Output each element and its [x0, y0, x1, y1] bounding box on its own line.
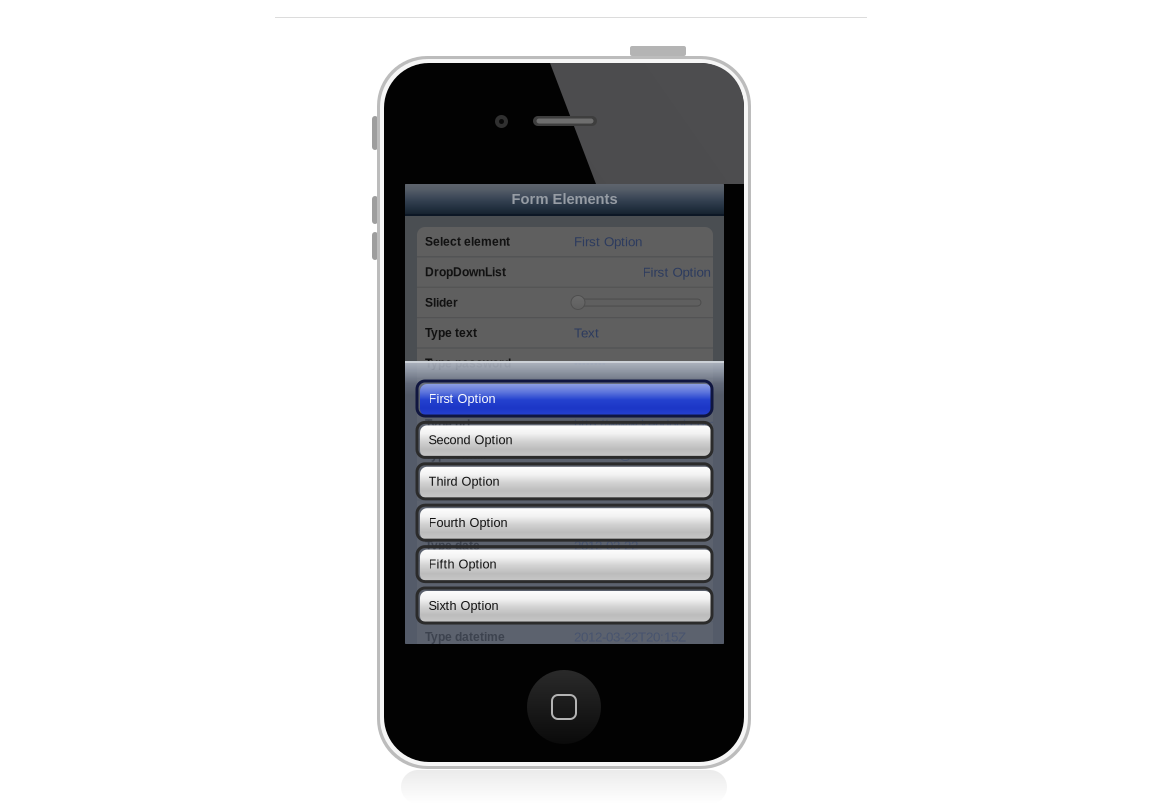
button[interactable]: Sixth Option [417, 588, 712, 623]
staticText: Second Option [428, 433, 512, 447]
staticText: Type date [425, 539, 480, 552]
staticText: 10:30 PM [574, 569, 630, 584]
button[interactable]: Type url [417, 409, 713, 439]
button[interactable]: DropDownList [417, 257, 713, 287]
staticText: Text [574, 325, 599, 340]
staticText: Select element [425, 235, 510, 248]
staticText: Type email [425, 448, 486, 461]
staticText: First Option [428, 391, 495, 406]
button[interactable]: Type time [417, 561, 713, 591]
button[interactable]: First Option [417, 381, 712, 416]
staticText: Type text [425, 326, 477, 340]
staticText: First Option [574, 234, 642, 249]
staticText: Type datetime [425, 630, 505, 644]
staticText: 2012-03-22 [574, 538, 638, 553]
button[interactable]: Type month [417, 592, 713, 621]
staticText: Fourth Option [428, 516, 507, 530]
button[interactable]: Second Option [417, 422, 712, 457]
staticText: +1 555 0100 [574, 508, 646, 523]
button[interactable]: Type search [417, 379, 713, 408]
staticText: Fifth Option [428, 557, 496, 571]
staticText: Slider [425, 296, 458, 309]
staticText: 2012-03-22T20:15Z [574, 629, 686, 644]
button[interactable]: Type datetime [417, 622, 713, 652]
button[interactable]: Type password [417, 349, 713, 378]
button[interactable]: Fourth Option [417, 505, 712, 540]
staticText: First Option [642, 265, 710, 280]
button[interactable]: Type email [417, 440, 713, 469]
staticText: http://www.kendoui.com [574, 417, 715, 432]
staticText: Type number [425, 478, 499, 492]
button[interactable]: Type tel [417, 501, 713, 530]
button[interactable]: Type number [417, 470, 713, 500]
button[interactable]: Third Option [417, 464, 712, 499]
staticText: Type password [425, 357, 511, 370]
staticText: Type time [425, 569, 480, 583]
staticText: •••••••• [574, 357, 606, 369]
staticText: Search [574, 386, 615, 401]
staticText: Type month [425, 600, 491, 613]
staticText: Type url [425, 417, 470, 431]
button[interactable]: Type date [417, 531, 713, 560]
button[interactable]: Select element [417, 227, 713, 256]
staticText: 2 [574, 477, 581, 492]
staticText: 2012-03 [574, 599, 620, 614]
button[interactable]: Fifth Option [417, 547, 712, 582]
staticText: Type tel [425, 509, 469, 522]
staticText: Form Elements [511, 191, 617, 207]
staticText: Third Option [428, 474, 499, 488]
staticText: Sixth Option [428, 598, 498, 613]
button[interactable]: Type text [417, 318, 713, 348]
staticText: Type search [425, 387, 495, 400]
staticText: DropDownList [425, 265, 506, 279]
staticText: kendoui@kendoui.com [574, 447, 707, 462]
